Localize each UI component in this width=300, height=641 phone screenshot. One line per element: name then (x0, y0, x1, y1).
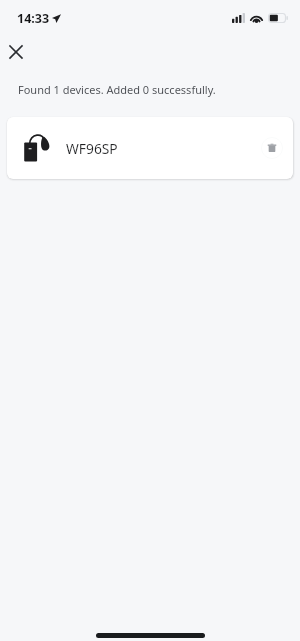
button[interactable]: WF96SP (7, 117, 293, 179)
staticText: 14:33 (17, 10, 50, 27)
button[interactable]: Delete (260, 136, 284, 160)
staticText: WF96SP (66, 139, 118, 158)
button[interactable]: Close (2, 38, 30, 66)
staticText: Found 1 devices. Added 0 successfully. (18, 82, 216, 97)
